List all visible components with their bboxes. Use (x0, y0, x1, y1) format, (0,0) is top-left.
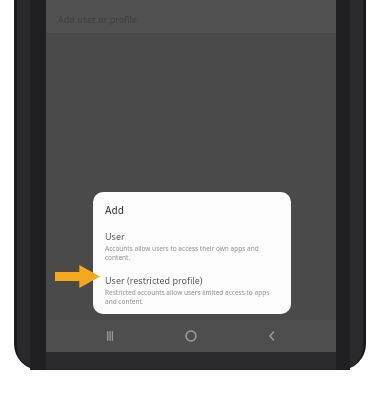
button[interactable]: User (restricted profile) (93, 272, 291, 308)
button[interactable]: Back (255, 320, 289, 352)
staticText: User (105, 230, 125, 242)
staticText: Add user or profile (58, 13, 138, 25)
staticText: Add (105, 203, 124, 217)
button[interactable]: Recent apps (93, 320, 127, 352)
staticText: Accounts allow users to access their own… (105, 244, 279, 262)
button[interactable]: User (93, 228, 291, 264)
button[interactable]: Home (174, 320, 208, 352)
staticText: Restricted accounts allow users limited … (105, 288, 279, 306)
other: Arrow pointing to restricted profile (55, 265, 100, 288)
staticText: User (restricted profile) (105, 274, 203, 286)
